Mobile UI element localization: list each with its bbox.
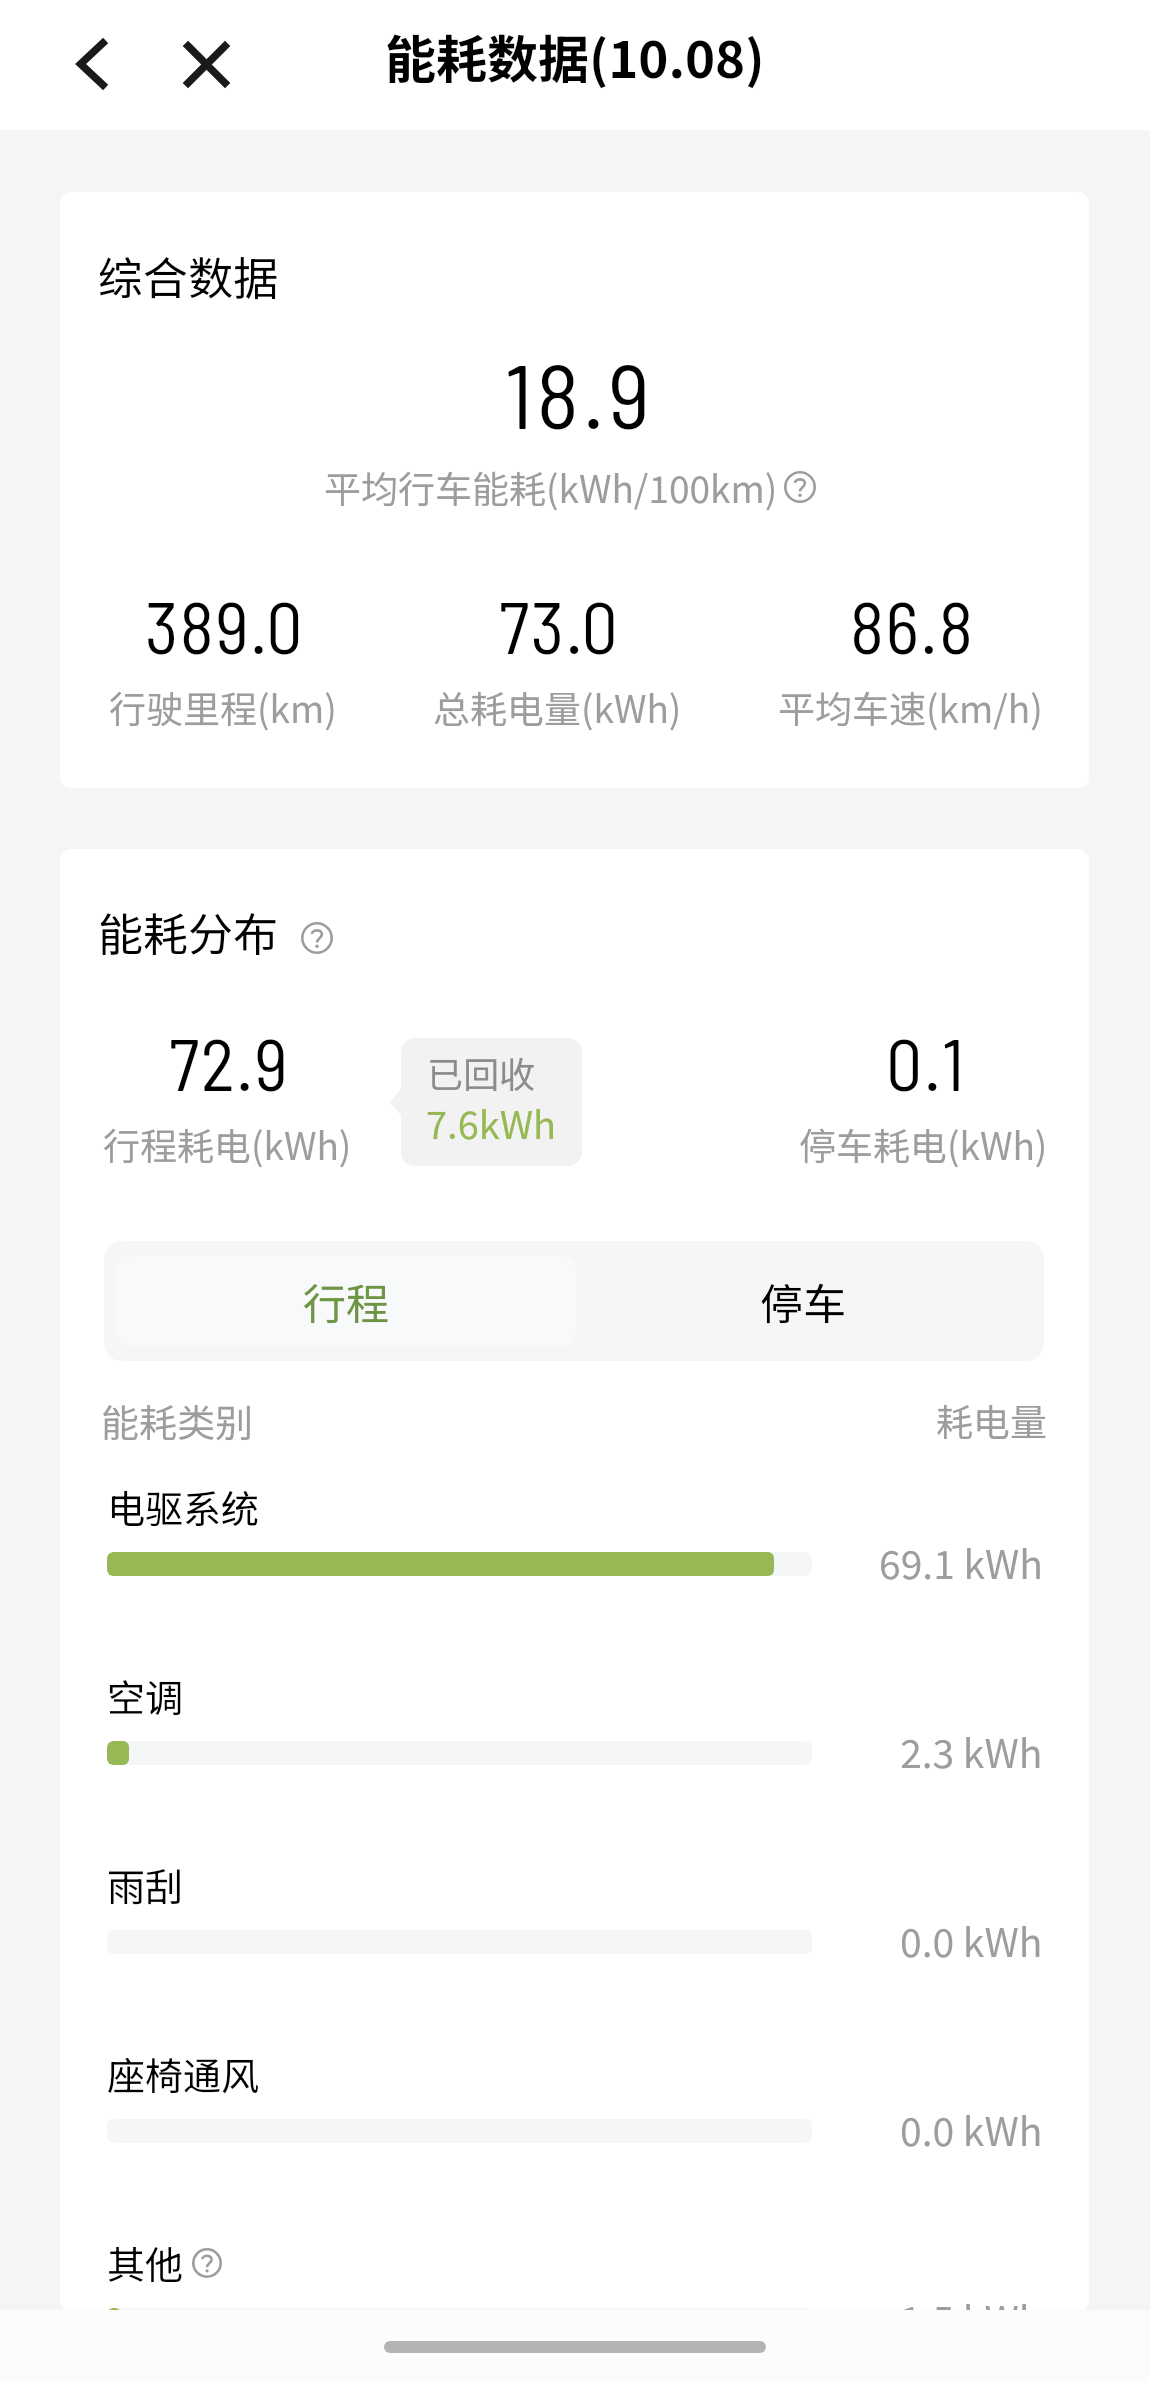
staticText: 2.3 kWh (900, 1723, 1043, 1779)
staticText: 0.0 kWh (900, 2101, 1043, 2157)
staticText: 空调 (107, 1668, 184, 1723)
staticText: 座椅通风 (107, 2046, 260, 2101)
button[interactable]: 停车 (569, 1241, 1037, 1361)
staticText: 平均车速(km/h) (778, 680, 1043, 734)
staticText: 综合数据 (98, 243, 279, 308)
staticText: 停车 (760, 1270, 846, 1332)
staticText: 7.6kWh (426, 1095, 557, 1150)
staticText: 耗电量 (936, 1393, 1047, 1447)
staticText: 行程 (303, 1270, 389, 1332)
staticText: 行程耗电(kWh) (103, 1117, 352, 1171)
button[interactable]: Help (784, 471, 816, 503)
staticText: 总耗电量(kWh) (433, 680, 682, 734)
staticText: 73.0 (499, 582, 620, 668)
staticText: 69.1 kWh (879, 1534, 1043, 1590)
staticText: 雨刮 (107, 1857, 184, 1912)
staticText: 72.9 (169, 1019, 290, 1105)
staticText: 能耗分布 (98, 899, 279, 964)
staticText: 389.0 (145, 582, 305, 668)
staticText: 0.0 kWh (900, 1912, 1043, 1968)
staticText: 能耗类别 (101, 1393, 254, 1448)
staticText: 停车耗电(kWh) (799, 1117, 1048, 1171)
staticText: 1.5 kWh (900, 2290, 1043, 2311)
staticText: 能耗数据(10.08) (385, 19, 765, 93)
staticText: 已回收 (427, 1046, 536, 1098)
staticText: 行驶里程(km) (109, 680, 337, 734)
staticText: 86.8 (850, 582, 975, 668)
staticText: 电驱系统 (107, 1479, 260, 1534)
button[interactable]: Close (163, 21, 249, 107)
staticText: 平均行车能耗(kWh/100km) (324, 460, 778, 514)
button[interactable]: Help (301, 922, 333, 954)
staticText: 18.9 (65, 339, 1089, 447)
button[interactable]: Back (49, 21, 135, 107)
staticText: 0.1 (886, 1019, 966, 1105)
button[interactable]: Help (192, 2248, 222, 2278)
staticText: 其他 (107, 2235, 184, 2290)
button[interactable]: 行程 (116, 1256, 576, 1346)
